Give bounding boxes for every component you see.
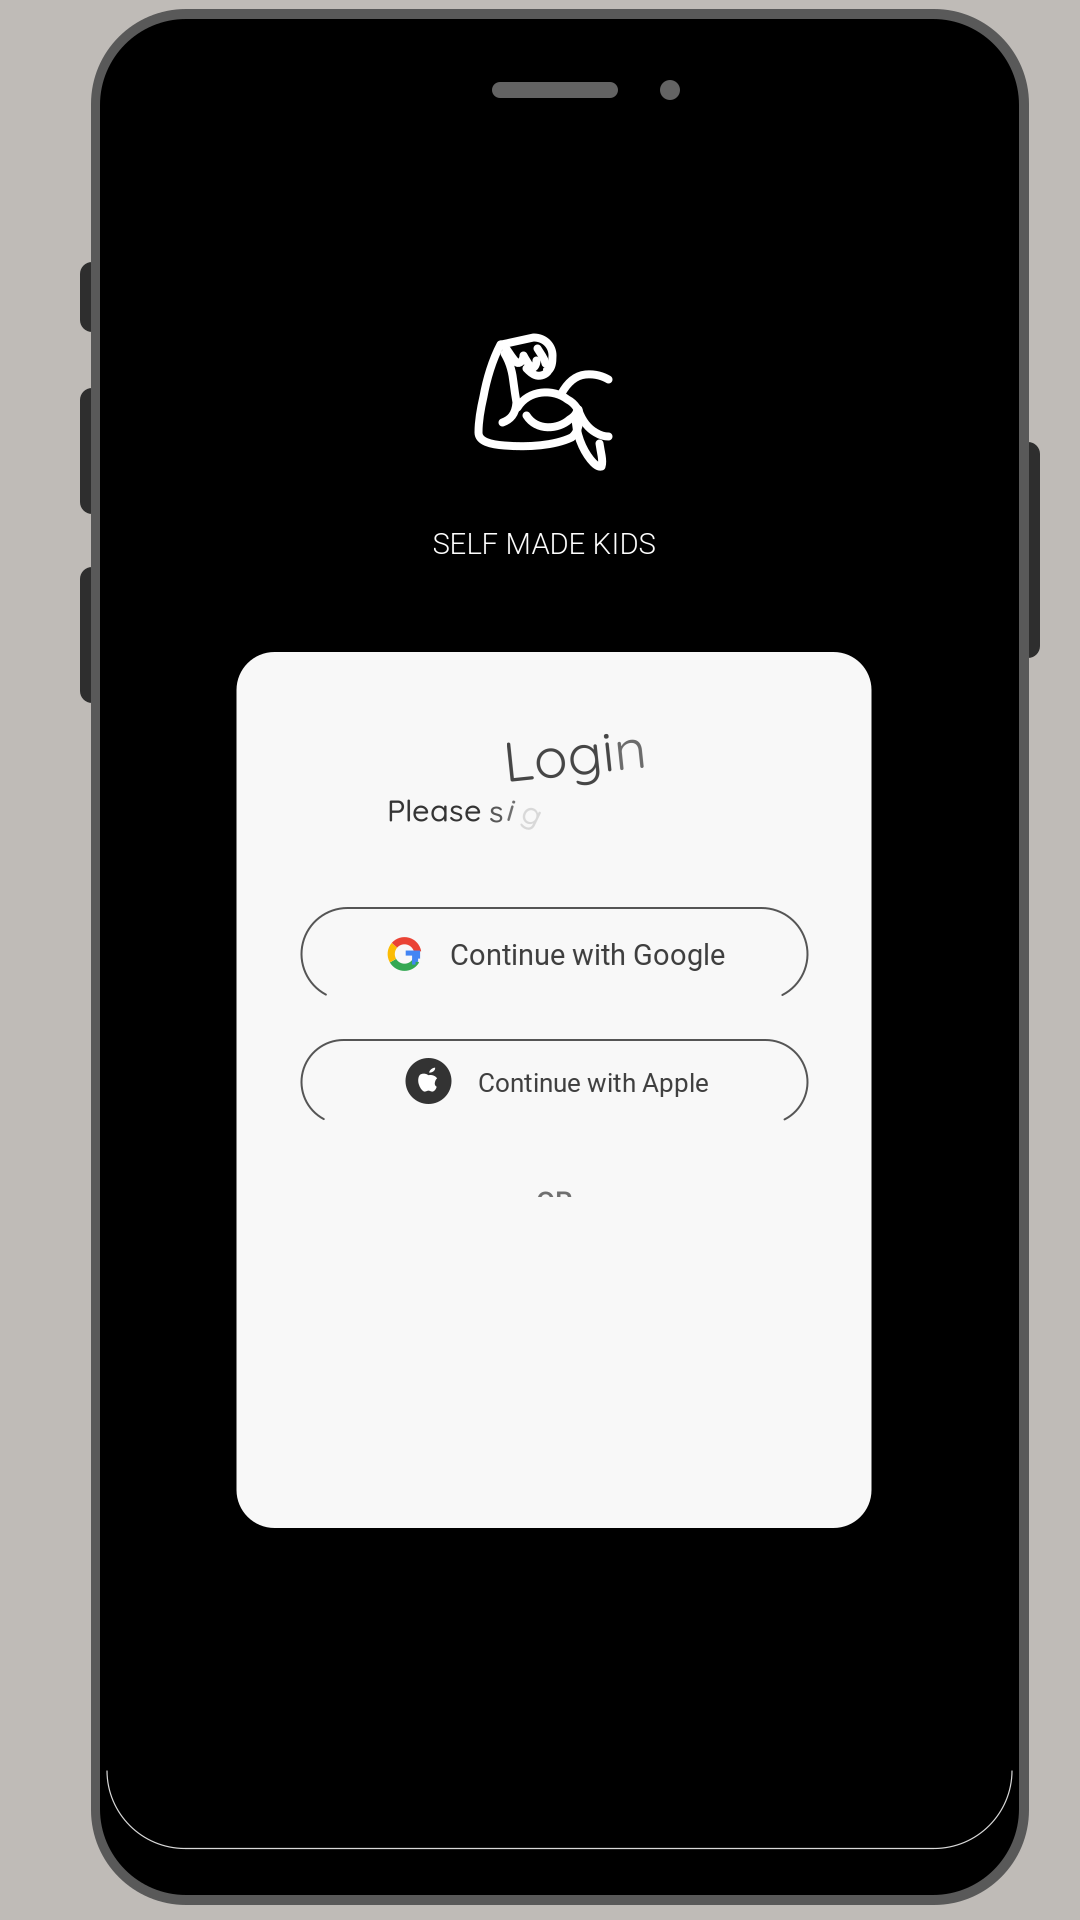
staticText: Please	[387, 791, 482, 829]
button[interactable]: Continue with Apple	[300, 1039, 808, 1125]
staticText: g	[523, 794, 542, 832]
staticText: Logi	[503, 719, 614, 789]
staticText: n	[614, 719, 646, 789]
staticText: OR	[536, 1186, 573, 1218]
staticText: SELF MADE KIDS	[432, 527, 655, 561]
staticText: Continue with Apple	[478, 1068, 709, 1098]
staticText: Continue with Google	[450, 938, 725, 972]
staticText: i	[508, 791, 515, 829]
button[interactable]: Continue with Google	[300, 907, 808, 1001]
staticText: s	[489, 792, 504, 830]
